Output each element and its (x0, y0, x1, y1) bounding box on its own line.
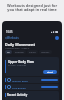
staticText: Workouts (7, 36, 19, 40)
button[interactable]: Cardio (27, 50, 38, 54)
button[interactable]: Mobility Reset (5, 77, 59, 83)
staticText: Workouts designed just for you that adap… (4, 3, 60, 12)
button[interactable]: Workouts (5, 36, 20, 40)
staticText: All (7, 51, 10, 54)
staticText: Adaptive plan · Week 3 (5, 47, 30, 50)
staticText: Start (47, 71, 53, 74)
staticText: Recent Activity (7, 93, 28, 97)
staticText: Core Builder (12, 86, 26, 89)
staticText: 10:35 (6, 30, 13, 33)
button[interactable]: Mobility (39, 50, 52, 54)
button[interactable]: Profile (55, 36, 59, 40)
staticText: Mobility Reset (12, 79, 28, 82)
staticText: 32 min · 8 moves (8, 64, 27, 67)
staticText: Daily Movement (5, 42, 35, 47)
staticText: Cardio (29, 51, 36, 54)
button[interactable]: Core Builder (5, 84, 59, 90)
button[interactable]: All (5, 50, 12, 54)
staticText: Upper Body Flow (8, 60, 34, 64)
staticText: Mobility (41, 51, 50, 54)
button[interactable]: Upper Body Flow (5, 57, 59, 76)
button[interactable]: Strength (13, 50, 26, 54)
button[interactable]: Start (43, 70, 57, 74)
staticText: Strength (15, 51, 24, 54)
